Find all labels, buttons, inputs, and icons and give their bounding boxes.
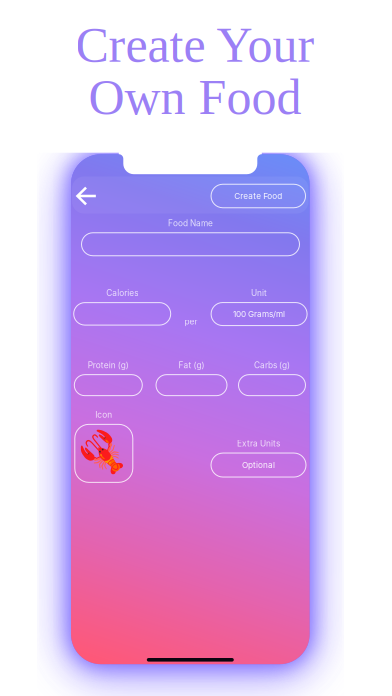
staticText: Fat (g) [178, 360, 204, 370]
button[interactable]: Back [70, 181, 102, 211]
staticText: Create Your [75, 17, 314, 72]
button[interactable]: Fat (g) [156, 360, 227, 396]
staticText: 🦞 [78, 429, 129, 477]
staticText: Calories [106, 288, 138, 298]
staticText: 100 Grams/ml [233, 309, 285, 319]
staticText: Icon [95, 410, 112, 420]
button[interactable]: Icon [75, 410, 133, 482]
staticText: Own Food [88, 69, 301, 125]
staticText: Extra Units [237, 438, 280, 448]
button[interactable]: Calories [74, 288, 171, 325]
staticText: Food Name [168, 218, 213, 228]
staticText: Protein (g) [88, 360, 129, 370]
staticText: Unit [251, 288, 267, 298]
button[interactable]: Protein (g) [74, 360, 142, 396]
staticText: Carbs (g) [254, 360, 290, 370]
button[interactable]: Create Food [211, 184, 306, 208]
staticText: Create Food [234, 191, 282, 201]
button[interactable]: Extra Units [211, 438, 306, 477]
button[interactable]: Unit [211, 288, 307, 325]
button[interactable]: Carbs (g) [238, 360, 305, 396]
button[interactable]: Food Name [81, 218, 299, 256]
staticText: Optional [242, 460, 275, 470]
staticText: per [184, 316, 197, 326]
